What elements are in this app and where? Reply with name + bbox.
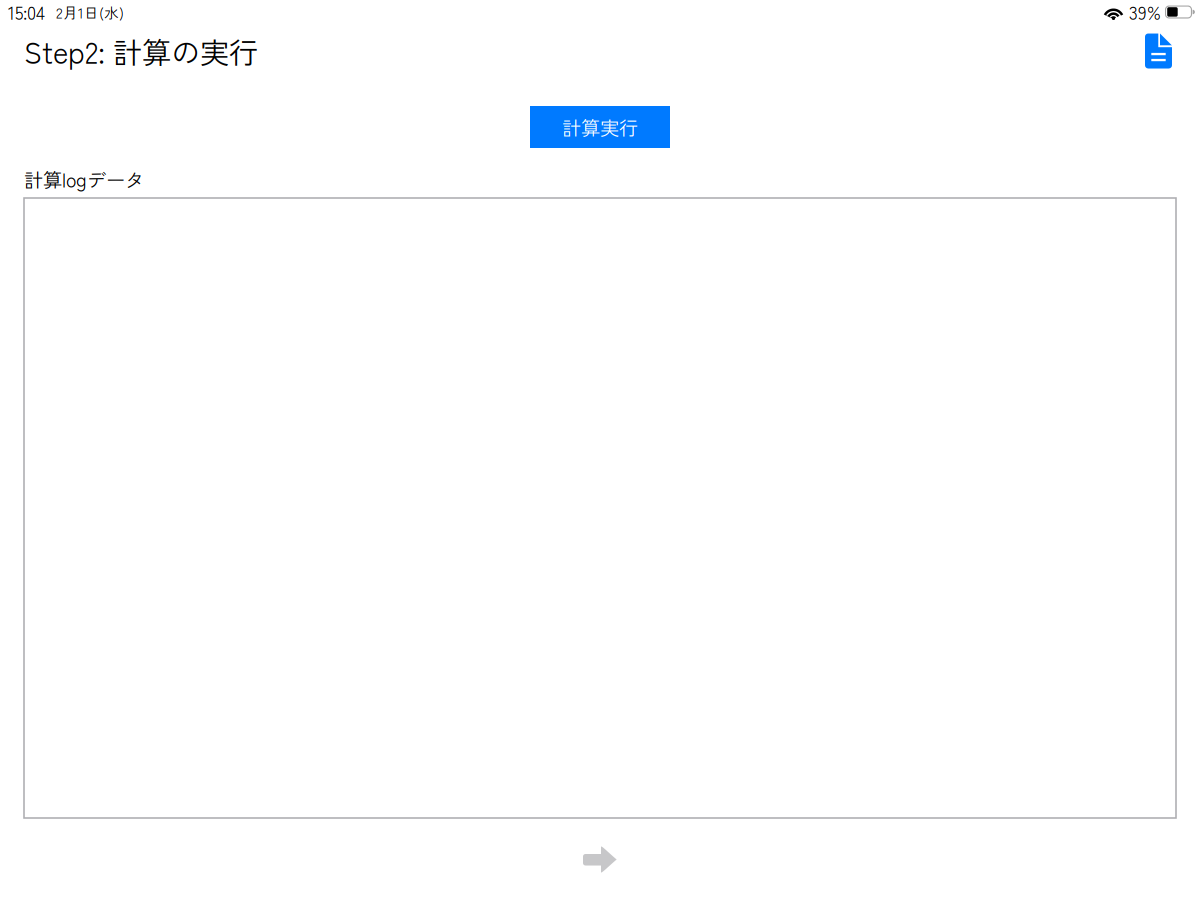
staticText: 計算実行	[562, 113, 638, 141]
staticText: 39%	[1129, 0, 1161, 25]
staticText: 2月1日(水)	[56, 1, 124, 23]
button[interactable]: 次のステップへ	[575, 837, 625, 882]
button[interactable]: 計算書類を表示	[1135, 26, 1182, 75]
staticText: Step2: 計算の実行	[24, 30, 258, 72]
staticText: 計算logデータ	[24, 165, 144, 193]
staticText: 15:04	[8, 0, 45, 25]
button[interactable]: 計算実行	[530, 106, 670, 148]
